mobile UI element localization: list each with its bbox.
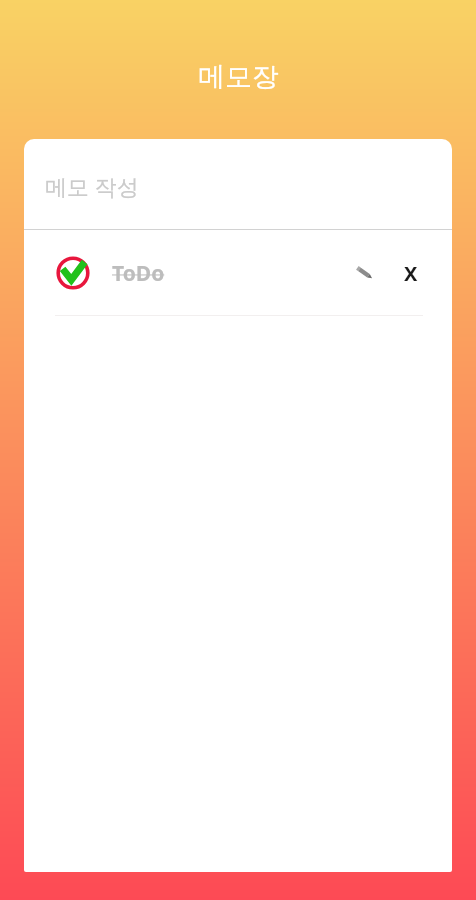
button[interactable]: Delete: [394, 256, 428, 290]
button[interactable]: Edit: [348, 256, 382, 290]
staticText: ToDo: [112, 259, 165, 288]
staticText: 메모 작성: [45, 171, 139, 201]
button[interactable]: 메모 작성: [24, 139, 452, 229]
staticText: X: [404, 260, 418, 287]
button[interactable]: Toggle complete: [24, 230, 452, 315]
staticText: 메모장: [198, 60, 279, 94]
button[interactable]: Toggle complete: [55, 255, 91, 291]
